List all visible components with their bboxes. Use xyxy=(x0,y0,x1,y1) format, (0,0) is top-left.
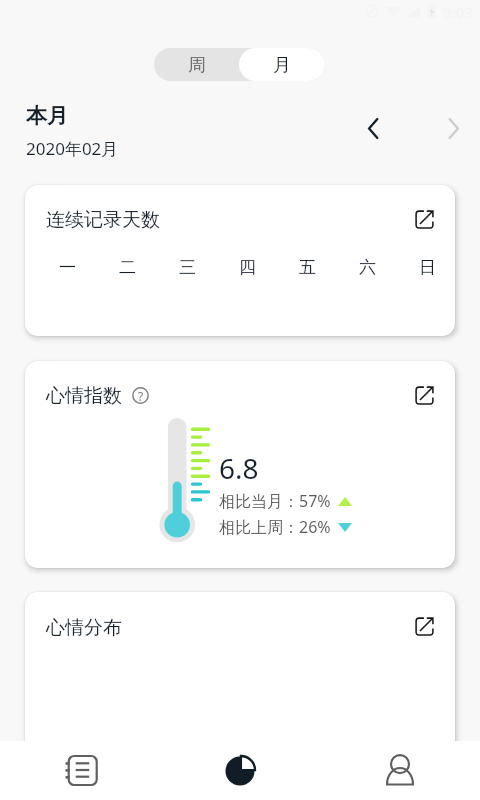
staticText: 一 xyxy=(59,257,76,278)
button[interactable]: Open details xyxy=(408,379,440,411)
staticText: 本月 xyxy=(26,103,68,129)
button[interactable]: Open details xyxy=(408,610,440,642)
staticText: 连续记录天数 xyxy=(46,208,160,232)
button[interactable]: Diary xyxy=(0,741,160,800)
staticText: 五 xyxy=(299,257,316,278)
staticText: 三 xyxy=(179,257,196,278)
staticText: 六 xyxy=(359,257,376,278)
button[interactable]: Statistics xyxy=(160,741,320,800)
staticText: 日 xyxy=(419,257,436,278)
button[interactable]: Open details xyxy=(408,203,440,235)
staticText: 月 xyxy=(273,54,291,77)
button[interactable]: Next month xyxy=(435,110,471,146)
staticText: ? xyxy=(138,388,144,404)
button[interactable]: Help xyxy=(132,387,149,404)
staticText: 相比当月：57% xyxy=(219,490,331,512)
staticText: 心情分布 xyxy=(46,616,122,640)
staticText: 相比上周：26% xyxy=(219,516,331,538)
button[interactable]: Previous month xyxy=(355,110,391,146)
staticText: 心情指数 xyxy=(46,384,122,408)
staticText: 周 xyxy=(188,54,206,77)
staticText: 二 xyxy=(119,257,136,278)
staticText: 2020年02月 xyxy=(26,137,119,160)
button[interactable]: 周 xyxy=(154,48,239,81)
staticText: 6.8 xyxy=(219,449,259,487)
staticText: 四 xyxy=(239,257,256,278)
button[interactable]: 月 xyxy=(239,48,325,81)
button[interactable]: Profile xyxy=(320,741,480,800)
